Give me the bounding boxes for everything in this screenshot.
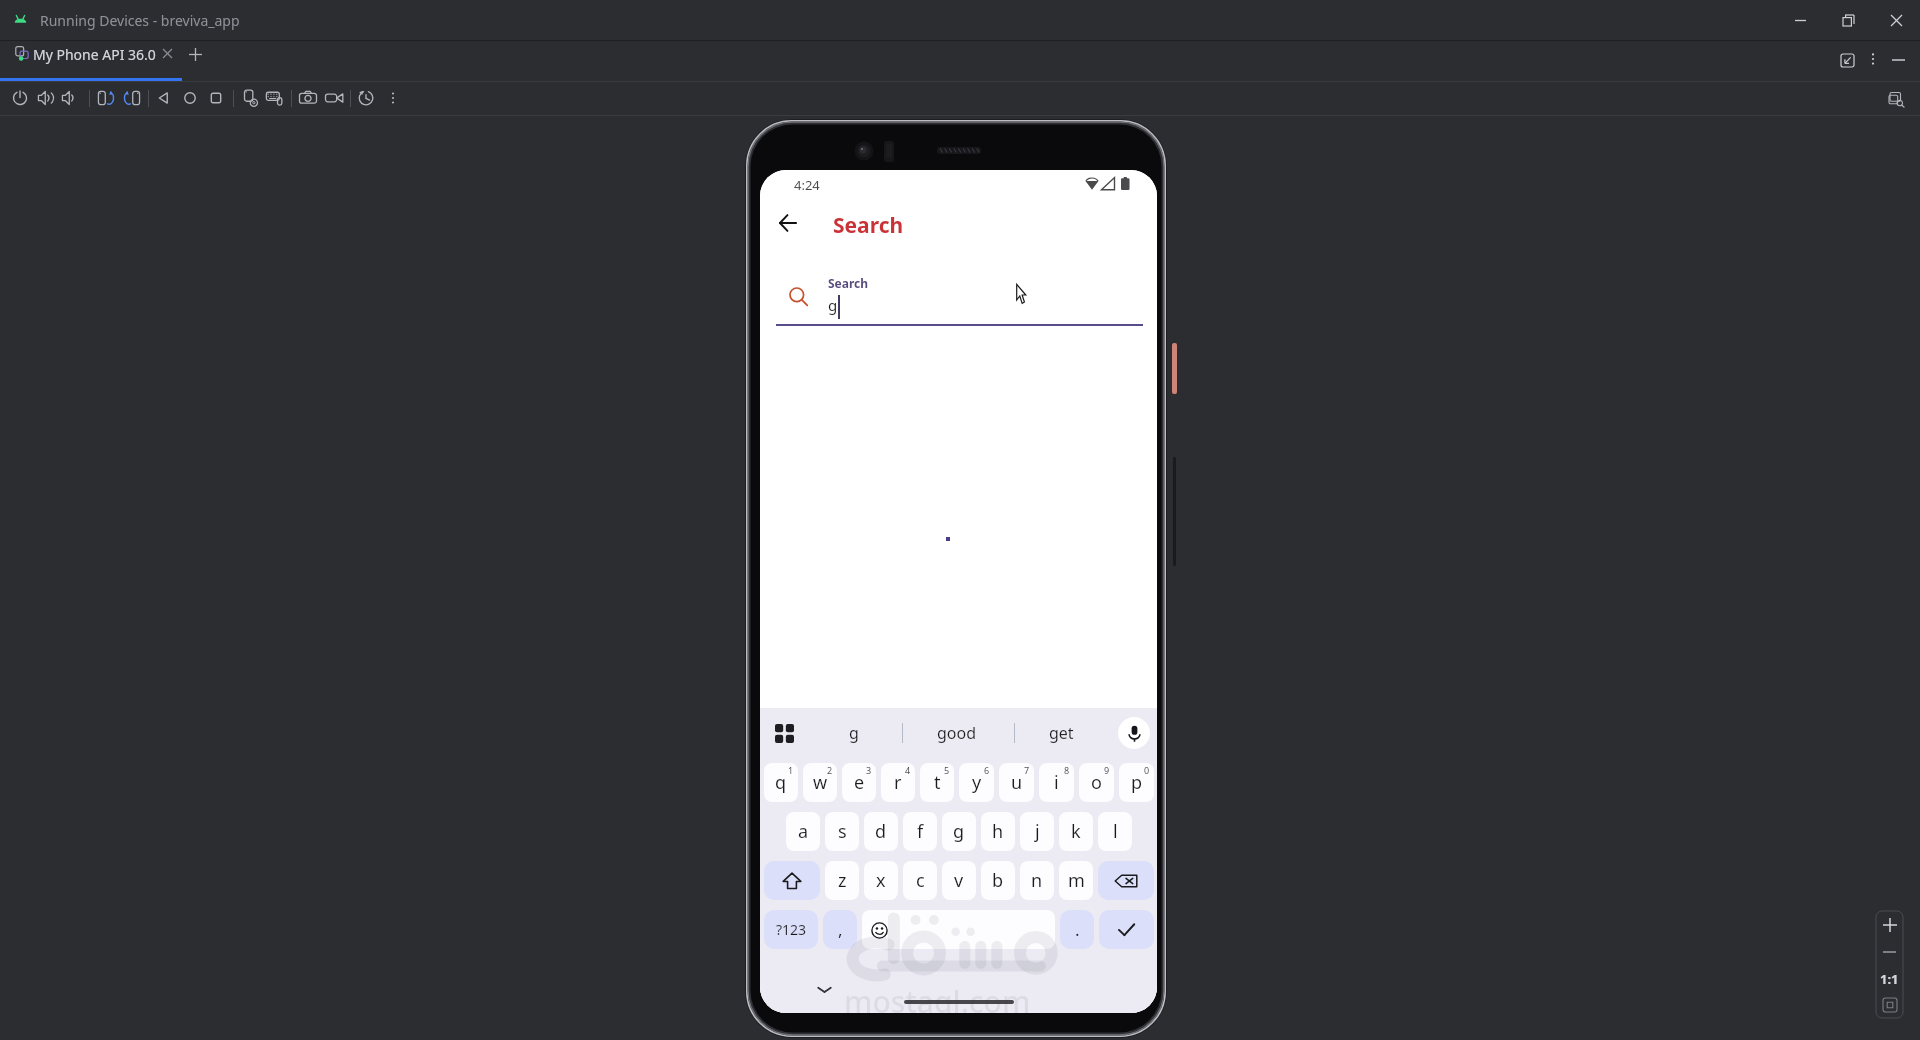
staticText: f: [917, 819, 924, 844]
staticText: s: [838, 819, 847, 844]
staticText: Running Devices - breviva_app: [40, 11, 240, 30]
staticText: 5: [944, 764, 950, 776]
staticText: get: [1049, 722, 1074, 744]
button[interactable]: ,: [823, 910, 857, 949]
button[interactable]: Rotate left: [93, 83, 119, 113]
staticText: 8: [1064, 764, 1070, 776]
button[interactable]: j: [1020, 812, 1054, 851]
staticText: m: [1068, 868, 1085, 893]
button[interactable]: o: [1079, 763, 1114, 802]
staticText: 4: [905, 764, 911, 776]
staticText: 2: [827, 764, 833, 776]
button[interactable]: Shift: [764, 861, 820, 900]
staticText: q: [775, 770, 787, 795]
button[interactable]: Volume down: [57, 83, 83, 113]
button[interactable]: Search field: [760, 170, 1157, 1013]
staticText: 1:1: [1880, 970, 1899, 988]
staticText: d: [875, 819, 887, 844]
button[interactable]: k: [1059, 812, 1093, 851]
staticText: e: [854, 770, 865, 795]
button[interactable]: Zoom out: [1876, 938, 1903, 965]
button[interactable]: t: [920, 763, 954, 802]
button[interactable]: f: [903, 812, 937, 851]
button[interactable]: s: [825, 812, 859, 851]
button[interactable]: good: [903, 708, 1011, 758]
button[interactable]: c: [903, 861, 937, 900]
button[interactable]: Home: [177, 83, 203, 113]
button[interactable]: b: [981, 861, 1015, 900]
button[interactable]: Record screen: [321, 83, 347, 113]
button[interactable]: d: [864, 812, 898, 851]
staticText: w: [813, 770, 828, 795]
button[interactable]: Undo: [353, 83, 379, 113]
button[interactable]: z: [825, 861, 859, 900]
staticText: o: [1091, 770, 1102, 795]
button[interactable]: w: [803, 763, 837, 802]
staticText: r: [894, 770, 902, 795]
staticText: good: [937, 722, 977, 744]
button[interactable]: Options: [1862, 48, 1884, 70]
staticText: 0: [1144, 764, 1150, 776]
button[interactable]: n: [1020, 861, 1054, 900]
button[interactable]: Find devices: [1884, 87, 1908, 111]
button[interactable]: e: [842, 763, 876, 802]
staticText: p: [1131, 770, 1143, 795]
button[interactable]: Zoom in: [1876, 911, 1903, 938]
button[interactable]: v: [942, 861, 976, 900]
staticText: b: [992, 868, 1004, 893]
staticText: g: [849, 722, 859, 744]
button[interactable]: Screenshot: [295, 83, 321, 113]
button[interactable]: .: [1060, 910, 1094, 949]
button[interactable]: Volume up: [33, 83, 59, 113]
button[interactable]: Voice input: [1118, 717, 1150, 749]
staticText: 9: [1104, 764, 1110, 776]
staticText: ,: [838, 918, 843, 941]
button[interactable]: g: [942, 812, 976, 851]
button[interactable]: My Phone API 36.0: [0, 40, 182, 83]
staticText: z: [838, 868, 847, 893]
button[interactable]: x: [864, 861, 898, 900]
button[interactable]: More: [380, 83, 406, 113]
button[interactable]: Back: [765, 200, 811, 246]
button[interactable]: Zoom to fit: [1877, 992, 1903, 1018]
staticText: c: [916, 868, 925, 893]
staticText: a: [798, 819, 809, 844]
button[interactable]: ?123: [764, 910, 818, 949]
button[interactable]: i: [1039, 763, 1074, 802]
button[interactable]: Minimize: [1776, 1, 1824, 40]
button[interactable]: Device settings: [238, 83, 264, 113]
button[interactable]: Hide panel: [1886, 48, 1910, 72]
button[interactable]: r: [881, 763, 915, 802]
button[interactable]: Restore: [1824, 1, 1872, 40]
button[interactable]: Keyboard toolbar: [768, 717, 800, 749]
button[interactable]: m: [1059, 861, 1093, 900]
button[interactable]: get: [1015, 708, 1107, 758]
staticText: 4:24: [794, 176, 820, 194]
button[interactable]: Enter: [1099, 910, 1154, 949]
button[interactable]: l: [1098, 812, 1132, 851]
button[interactable]: 1:1: [1876, 965, 1903, 992]
button[interactable]: New device tab: [183, 42, 207, 66]
button[interactable]: Close: [1872, 1, 1920, 40]
button[interactable]: u: [999, 763, 1034, 802]
button[interactable]: Overview: [203, 83, 229, 113]
button[interactable]: y: [959, 763, 994, 802]
button[interactable]: Rotate right: [119, 83, 145, 113]
button[interactable]: q: [764, 763, 798, 802]
button[interactable]: h: [981, 812, 1015, 851]
button[interactable]: p: [1119, 763, 1154, 802]
staticText: l: [1113, 819, 1118, 844]
button[interactable]: g: [809, 708, 898, 758]
button[interactable]: a: [786, 812, 820, 851]
staticText: u: [1011, 770, 1023, 795]
staticText: g: [828, 295, 838, 315]
staticText: j: [1035, 819, 1040, 844]
button[interactable]: Space: [862, 910, 1055, 949]
button[interactable]: Hide keyboard: [809, 974, 839, 1004]
staticText: g: [953, 819, 965, 844]
button[interactable]: Hardware input: [262, 83, 288, 113]
button[interactable]: Power: [7, 83, 33, 113]
button[interactable]: Backspace: [1098, 861, 1154, 900]
button[interactable]: Collapse panel: [1835, 48, 1859, 72]
button[interactable]: Back: [151, 83, 177, 113]
